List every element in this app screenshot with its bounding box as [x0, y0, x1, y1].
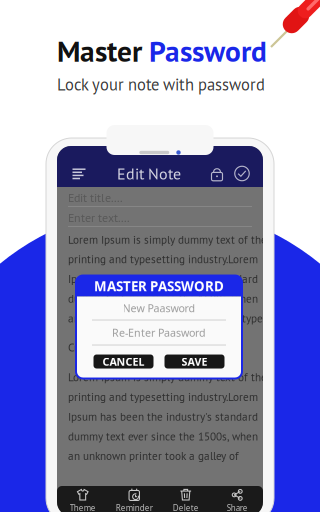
staticText: Edit title.... [68, 190, 123, 205]
staticText: Ipsum has been the industry's standard [68, 409, 258, 424]
button[interactable]: Delete [160, 487, 211, 512]
staticText: Share [227, 503, 248, 512]
staticText: Password [149, 32, 267, 70]
button[interactable]: Theme [57, 487, 108, 512]
staticText: an unknown printer took a galley of [68, 449, 239, 463]
staticText: Reminder [116, 503, 153, 512]
button[interactable]: Save note [229, 160, 255, 186]
staticText: Lock your note with password [57, 74, 265, 95]
staticText: dummy text ever since the 1500s, when [68, 429, 258, 443]
staticText: New Paasword [122, 301, 195, 315]
staticText: SAVE [181, 354, 207, 369]
staticText: Edit Note [117, 163, 181, 184]
staticText: Re-Enter Paasword [112, 325, 206, 340]
staticText: Theme [70, 503, 96, 512]
button[interactable]: Lock note [205, 160, 229, 186]
staticText: printing and typesetting industry.Lorem [68, 252, 258, 266]
staticText: MASTER PASSWORD [94, 277, 224, 295]
button[interactable]: Share [211, 487, 263, 512]
staticText: Lorem Ipsum is simply dummy text of the [68, 370, 267, 384]
staticText: printing and typesetting industry.Lorem [68, 390, 258, 404]
staticText: Delete [173, 503, 199, 512]
staticText: Master [57, 32, 149, 70]
staticText: Ipsum has been the industry's standard [68, 272, 258, 286]
staticText: an unknown printer took a galley of type [68, 311, 263, 326]
button[interactable]: Reminder [108, 487, 160, 512]
staticText: Lorem Ipsum is simply dummy text of the [68, 232, 267, 247]
button[interactable]: Menu [65, 158, 93, 188]
staticText: Cras ultricies ex a luctus congue. [68, 340, 227, 355]
staticText: dummy text ever since the 1500s, when [68, 291, 258, 306]
button[interactable]: SAVE [164, 354, 224, 368]
staticText: CANCEL [102, 354, 144, 369]
staticText: Enter text.... [68, 210, 130, 225]
button[interactable]: CANCEL [93, 354, 153, 368]
